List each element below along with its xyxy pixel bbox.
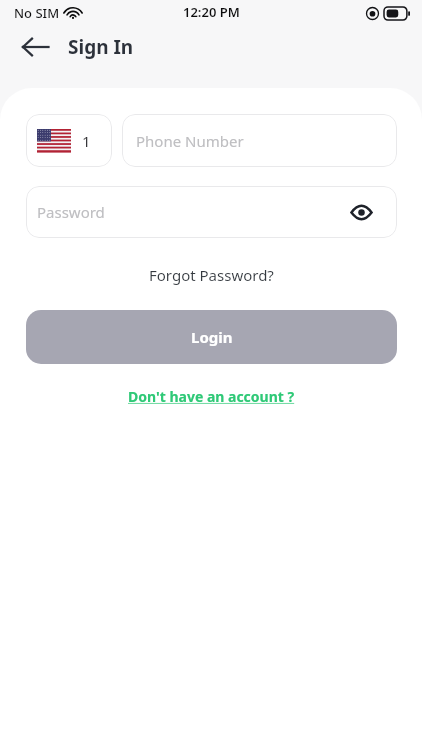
button[interactable]: Password	[26, 186, 397, 238]
staticText: 1	[82, 131, 91, 151]
staticText: Sign In	[68, 34, 134, 60]
button[interactable]: Login	[26, 310, 397, 364]
button[interactable]: Don't have an account ?	[122, 383, 301, 410]
button[interactable]: Back	[14, 28, 56, 66]
staticText: Phone Number	[136, 131, 244, 151]
staticText: No SIM	[14, 4, 60, 22]
button[interactable]: Phone Number	[122, 114, 397, 167]
staticText: Don't have an account ?	[128, 387, 295, 406]
staticText: Forgot Password?	[149, 265, 274, 285]
button[interactable]: Forgot Password?	[143, 261, 280, 289]
button[interactable]: Show password	[348, 199, 374, 225]
staticText: 12:20 PM	[183, 3, 240, 21]
staticText: Password	[37, 202, 105, 222]
staticText: Login	[191, 327, 233, 347]
button[interactable]: 1	[26, 114, 112, 167]
